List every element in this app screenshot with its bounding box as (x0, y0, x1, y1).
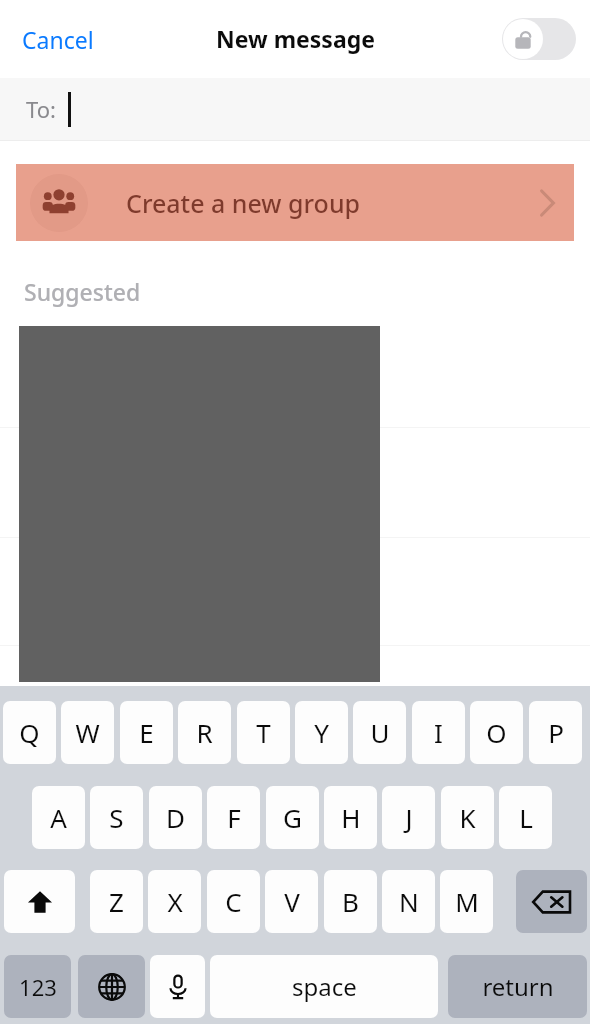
staticText: space (292, 970, 357, 1003)
button[interactable]: J (382, 786, 435, 849)
staticText: X (167, 884, 183, 919)
staticText: S (109, 800, 124, 835)
button[interactable]: U (353, 701, 406, 764)
button[interactable]: Q (3, 701, 56, 764)
button[interactable]: E (120, 701, 173, 764)
staticText: R (196, 715, 213, 750)
staticText: C (225, 884, 242, 919)
button[interactable]: Y (295, 701, 348, 764)
staticText: 123 (19, 972, 57, 1002)
button[interactable]: L (499, 786, 552, 849)
button[interactable]: D (149, 786, 202, 849)
staticText: New message (216, 23, 375, 54)
button[interactable]: Z (90, 870, 143, 933)
button[interactable]: X (148, 870, 201, 933)
staticText: P (548, 715, 564, 750)
button[interactable]: space (210, 955, 438, 1018)
button[interactable]: Next keyboard (78, 955, 145, 1018)
staticText: Q (19, 715, 40, 750)
staticText: O (486, 715, 507, 750)
button[interactable]: Create a new group (16, 164, 574, 241)
staticText: Create a new group (126, 186, 361, 220)
staticText: U (370, 715, 390, 750)
button[interactable]: R (178, 701, 231, 764)
staticText: L (519, 800, 533, 835)
staticText: Cancel (22, 24, 94, 55)
button[interactable]: P (529, 701, 582, 764)
staticText: return (482, 970, 554, 1003)
button[interactable]: H (324, 786, 377, 849)
staticText: W (75, 715, 100, 750)
button[interactable]: Encryption lock toggle, off (502, 18, 576, 60)
button[interactable]: Cancel (14, 18, 102, 61)
staticText: V (284, 884, 300, 919)
staticText: J (405, 800, 413, 835)
staticText: I (434, 715, 443, 750)
staticText: F (227, 800, 241, 835)
button[interactable]: M (440, 870, 493, 933)
staticText: To: (26, 94, 56, 124)
button[interactable]: F (207, 786, 260, 849)
staticText: H (341, 800, 361, 835)
staticText: Suggested (24, 276, 141, 307)
button[interactable]: B (324, 870, 377, 933)
button[interactable]: S (90, 786, 143, 849)
staticText: E (139, 715, 154, 750)
button[interactable]: A (32, 786, 85, 849)
staticText: G (283, 800, 302, 835)
staticText: Y (314, 715, 329, 750)
button[interactable]: Dictate (150, 955, 205, 1018)
staticText: B (342, 884, 359, 919)
button[interactable]: W (61, 701, 114, 764)
staticText: T (256, 715, 271, 750)
staticText: M (455, 884, 479, 919)
button[interactable]: K (441, 786, 494, 849)
staticText: D (166, 800, 185, 835)
button[interactable]: I (412, 701, 465, 764)
button[interactable]: Shift (4, 870, 75, 933)
button[interactable]: 123 (4, 955, 71, 1018)
button[interactable]: Backspace (516, 870, 587, 933)
button[interactable]: return (448, 955, 587, 1018)
button[interactable]: G (266, 786, 319, 849)
button[interactable]: V (265, 870, 318, 933)
button[interactable]: O (470, 701, 523, 764)
button[interactable]: T (237, 701, 290, 764)
button[interactable]: N (382, 870, 435, 933)
staticText: K (459, 800, 476, 835)
staticText: Z (109, 884, 124, 919)
button[interactable]: C (207, 870, 260, 933)
staticText: A (50, 800, 67, 835)
staticText: N (399, 884, 419, 919)
